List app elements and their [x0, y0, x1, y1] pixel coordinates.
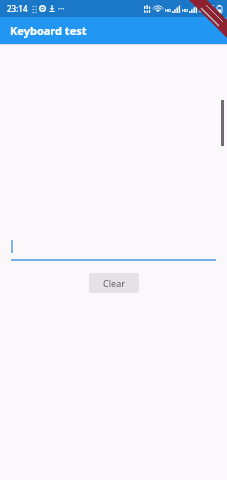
- staticText: ···: [58, 3, 65, 14]
- staticText: Clear: [103, 277, 125, 289]
- staticText: 58%: [199, 3, 215, 14]
- staticText: 23:14: [7, 3, 28, 14]
- button[interactable]: Text input field: [11, 239, 216, 261]
- staticText: HD: [182, 8, 188, 13]
- staticText: Keyboard test: [10, 23, 87, 38]
- staticText: HD: [165, 8, 171, 13]
- button[interactable]: Clear: [89, 273, 139, 293]
